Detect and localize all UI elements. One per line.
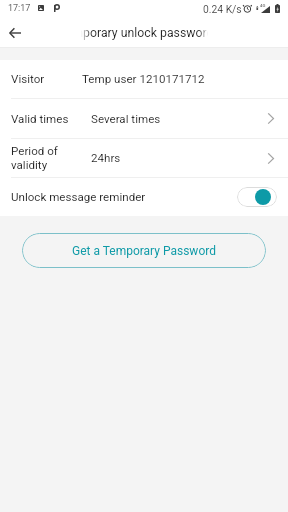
staticText: Several times [91, 112, 161, 126]
button[interactable]: Valid times [0, 99, 288, 138]
staticText: Get a Temporary Password [72, 244, 216, 258]
staticText: validity [11, 158, 48, 172]
staticText: 24hrs [91, 151, 121, 165]
staticText: 17:17 [8, 3, 31, 14]
staticText: Period of [11, 144, 58, 158]
button[interactable]: Unlock message reminder [0, 178, 288, 216]
staticText: Unlock message reminder [11, 190, 146, 204]
staticText: Visitor [11, 72, 45, 86]
staticText: Valid times [11, 112, 69, 126]
button[interactable]: Period of [0, 139, 288, 177]
button[interactable]: Visitor [0, 60, 288, 98]
staticText: Temp user 1210171712 [82, 72, 205, 86]
staticText: 4G [260, 3, 266, 8]
button[interactable]: Get a Temporary Password [22, 233, 266, 268]
staticText: 0.24 K/s [203, 3, 242, 15]
button[interactable]: Back [0, 18, 30, 47]
staticText: Temporary unlock password [81, 26, 208, 40]
